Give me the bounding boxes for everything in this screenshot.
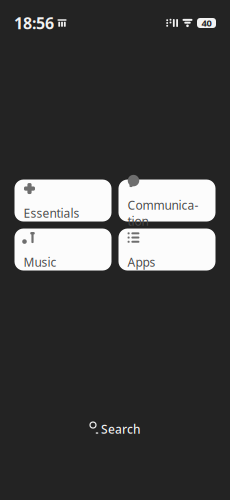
staticText: Music: [23, 254, 56, 270]
staticText: Apps: [127, 254, 155, 270]
button[interactable]: Apps: [118, 228, 215, 270]
staticText: Search: [101, 421, 141, 437]
button[interactable]: Essentials: [14, 179, 111, 221]
button[interactable]: Communication: [118, 179, 215, 221]
staticText: Essentials: [23, 205, 79, 221]
button[interactable]: Music: [14, 228, 111, 270]
staticText: 18:56: [14, 12, 54, 34]
staticText: Communication: [127, 197, 198, 229]
button[interactable]: Search: [79, 416, 151, 442]
staticText: 40: [201, 17, 211, 29]
